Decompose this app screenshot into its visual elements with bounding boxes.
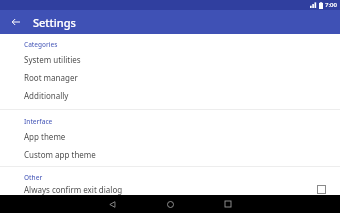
staticText: Additionally	[24, 90, 69, 101]
staticText: Always confirm exit dialog	[24, 184, 317, 195]
button[interactable]: Always confirm exit dialog	[0, 183, 340, 195]
staticText: Root manager	[24, 72, 78, 83]
staticText: Interface	[24, 117, 53, 126]
staticText: System utilities	[24, 54, 81, 65]
button[interactable]: Back	[7, 13, 25, 31]
button[interactable]: Custom app theme	[0, 145, 340, 163]
staticText: Settings	[33, 15, 76, 30]
staticText: 7:00	[325, 1, 337, 9]
staticText: Categories	[24, 40, 58, 49]
button[interactable]: Additionally	[0, 86, 340, 104]
button[interactable]: App theme	[0, 127, 340, 145]
staticText: Custom app theme	[24, 149, 96, 160]
button[interactable]: System utilities	[0, 50, 340, 68]
staticText: App theme	[24, 131, 66, 142]
button[interactable]: Root manager	[0, 68, 340, 86]
staticText: Other	[24, 173, 43, 182]
button[interactable]: Home	[162, 196, 178, 212]
button[interactable]: Recent apps	[220, 196, 236, 212]
button[interactable]: Back	[104, 196, 120, 212]
